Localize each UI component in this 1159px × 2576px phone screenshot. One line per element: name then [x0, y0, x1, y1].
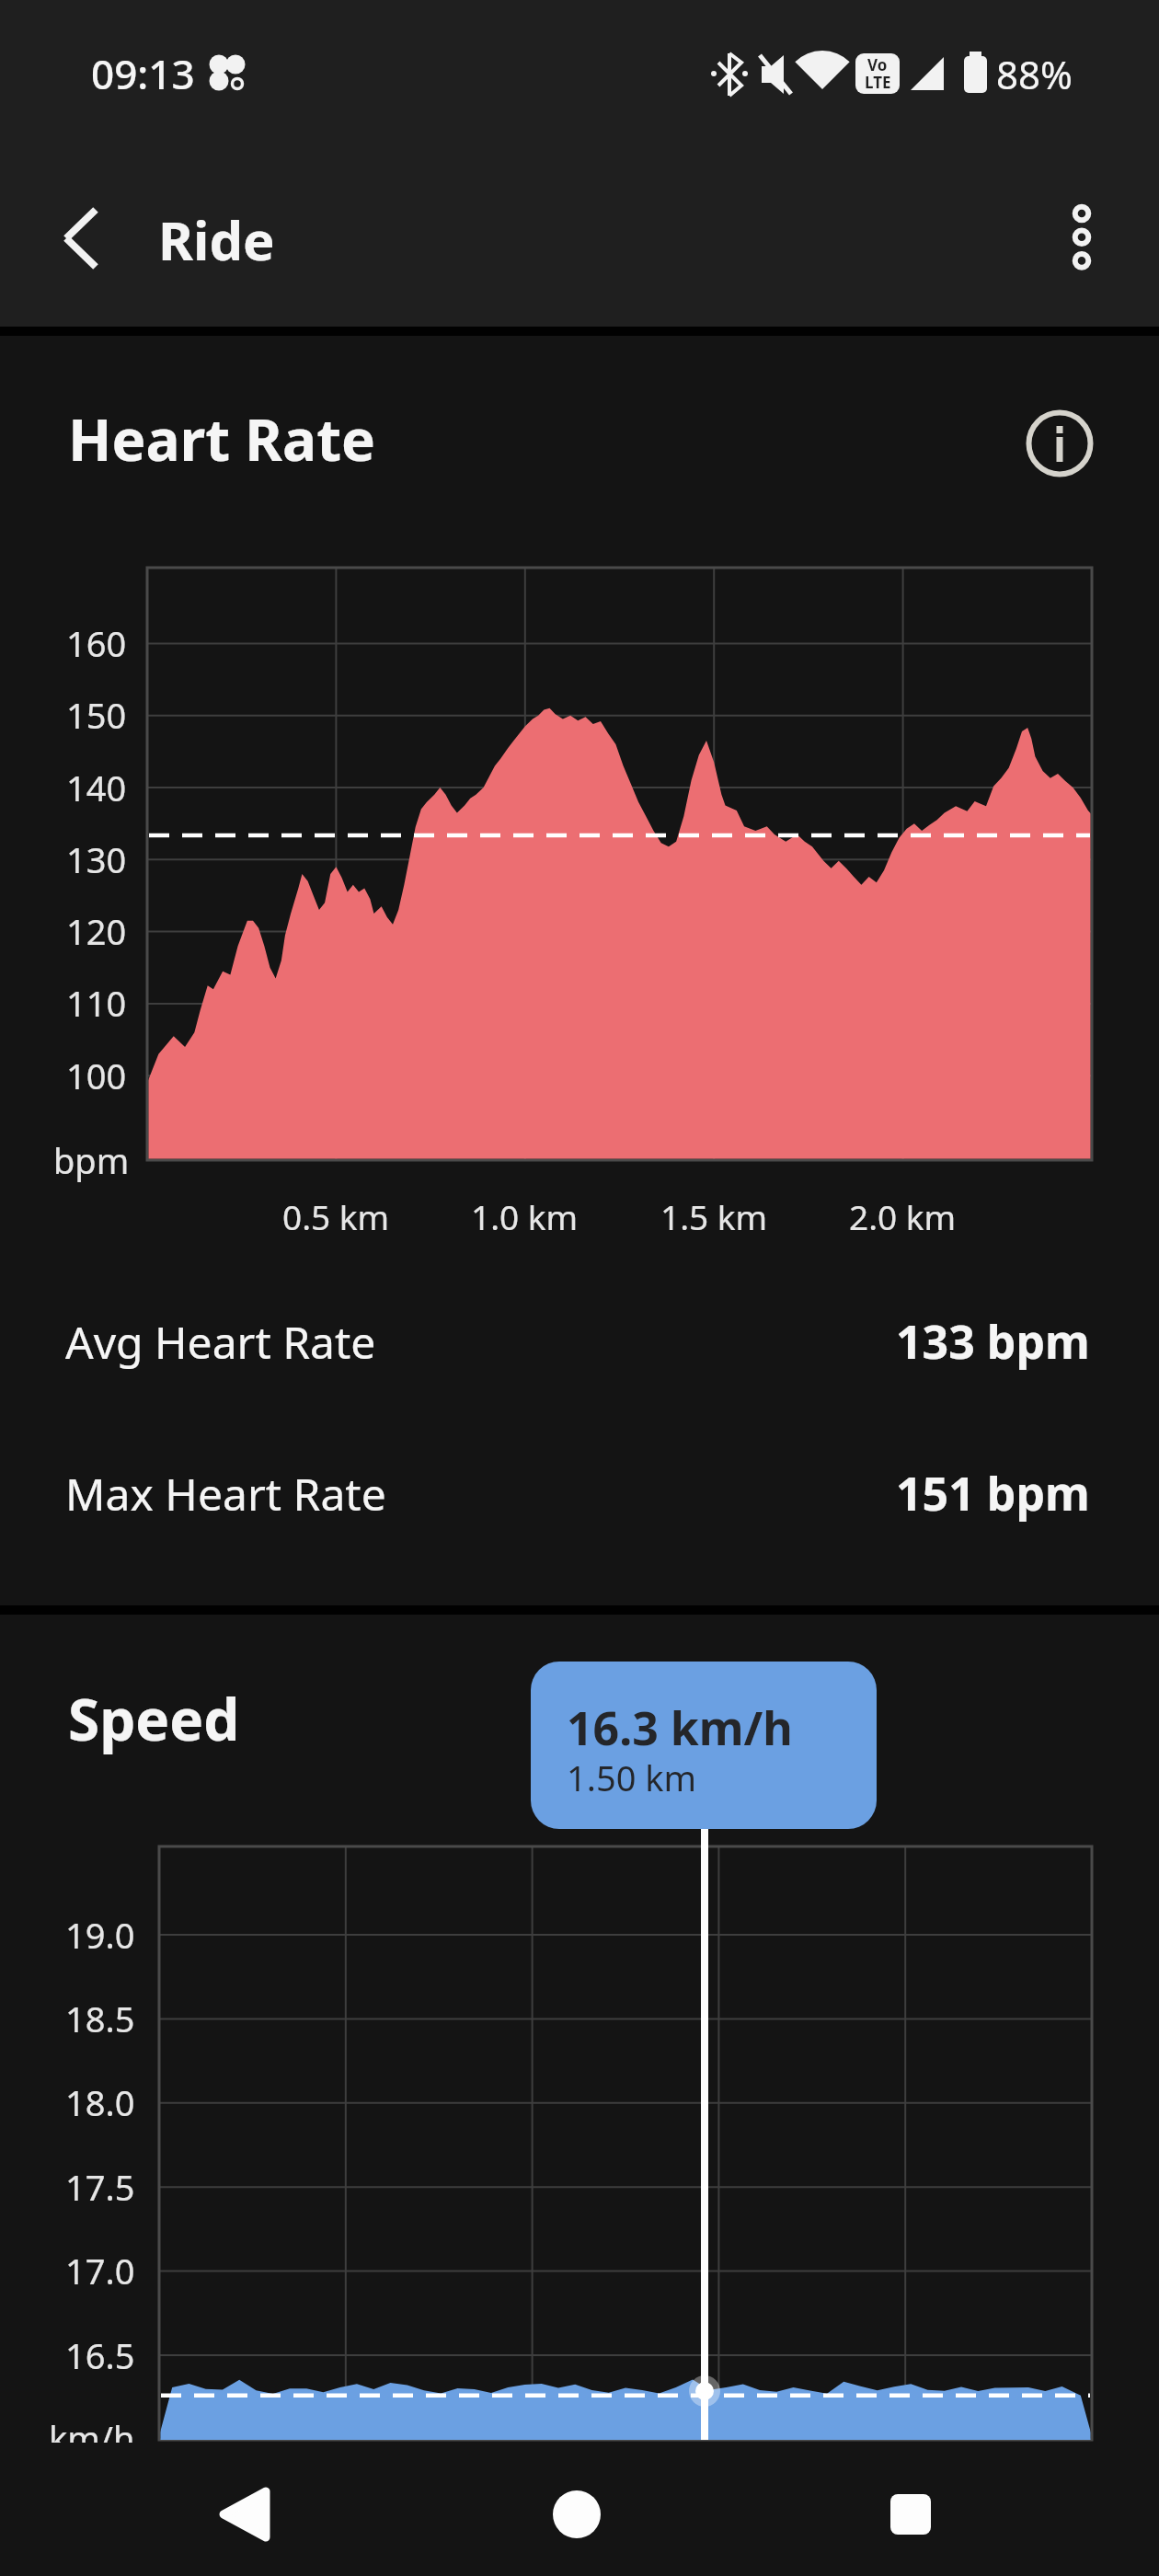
staticText: 1.0 km: [471, 1193, 579, 1239]
staticText: 100: [66, 1052, 127, 1099]
staticText: 18.5: [65, 1995, 135, 2042]
staticText: Heart Rate: [68, 400, 376, 477]
staticText: Vo: [867, 54, 888, 75]
staticText: LTE: [865, 72, 891, 93]
staticText: 16.5: [65, 2331, 135, 2379]
staticText: 17.0: [65, 2247, 135, 2294]
staticText: 120: [66, 907, 127, 955]
staticText: 17.5: [65, 2163, 135, 2211]
staticText: 130: [66, 835, 127, 883]
staticText: 160: [66, 619, 127, 667]
button[interactable]: [1030, 184, 1131, 294]
staticText: 0.5 km: [282, 1193, 390, 1239]
staticText: Ride: [158, 203, 275, 276]
button[interactable]: [531, 1662, 877, 1829]
staticText: 2.0 km: [849, 1193, 957, 1239]
staticText: 88%: [996, 48, 1073, 100]
button[interactable]: [180, 2450, 309, 2576]
staticText: 1.5 km: [660, 1193, 768, 1239]
button[interactable]: [512, 2450, 641, 2576]
staticText: 09:13: [91, 46, 195, 101]
staticText: 140: [66, 764, 127, 811]
staticText: 133 bpm: [896, 1310, 1090, 1373]
staticText: Avg Heart Rate: [65, 1312, 376, 1372]
staticText: 18.0: [65, 2078, 135, 2126]
staticText: Speed: [68, 1680, 240, 1757]
staticText: 150: [66, 691, 127, 739]
staticText: 16.3 km/h: [567, 1696, 793, 1759]
staticText: 19.0: [65, 1911, 135, 1959]
staticText: 151 bpm: [896, 1462, 1090, 1524]
button[interactable]: [37, 193, 129, 285]
button[interactable]: [1019, 403, 1102, 486]
staticText: bpm: [53, 1136, 130, 1184]
button[interactable]: [0, 1431, 1159, 1558]
staticText: 110: [66, 979, 127, 1027]
button[interactable]: [846, 2450, 975, 2576]
staticText: Max Heart Rate: [65, 1464, 386, 1524]
button[interactable]: [0, 1279, 1159, 1406]
staticText: km/h: [49, 2414, 135, 2462]
staticText: 1.50 km: [567, 1754, 697, 1801]
